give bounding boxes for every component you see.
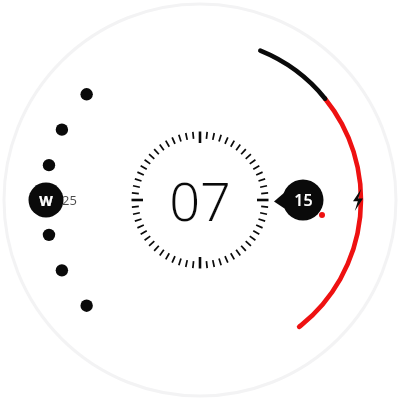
staticText: 15	[294, 189, 313, 211]
button[interactable]: Notifications 15	[0, 0, 400, 400]
staticText: 25	[62, 191, 77, 209]
staticText: 07	[169, 163, 231, 237]
staticText: W	[39, 191, 53, 210]
other: Activity progress	[0, 0, 400, 400]
button[interactable]: 07	[0, 0, 400, 400]
button[interactable]: Battery charging	[0, 0, 400, 400]
button[interactable]: Weather complication	[0, 0, 400, 400]
